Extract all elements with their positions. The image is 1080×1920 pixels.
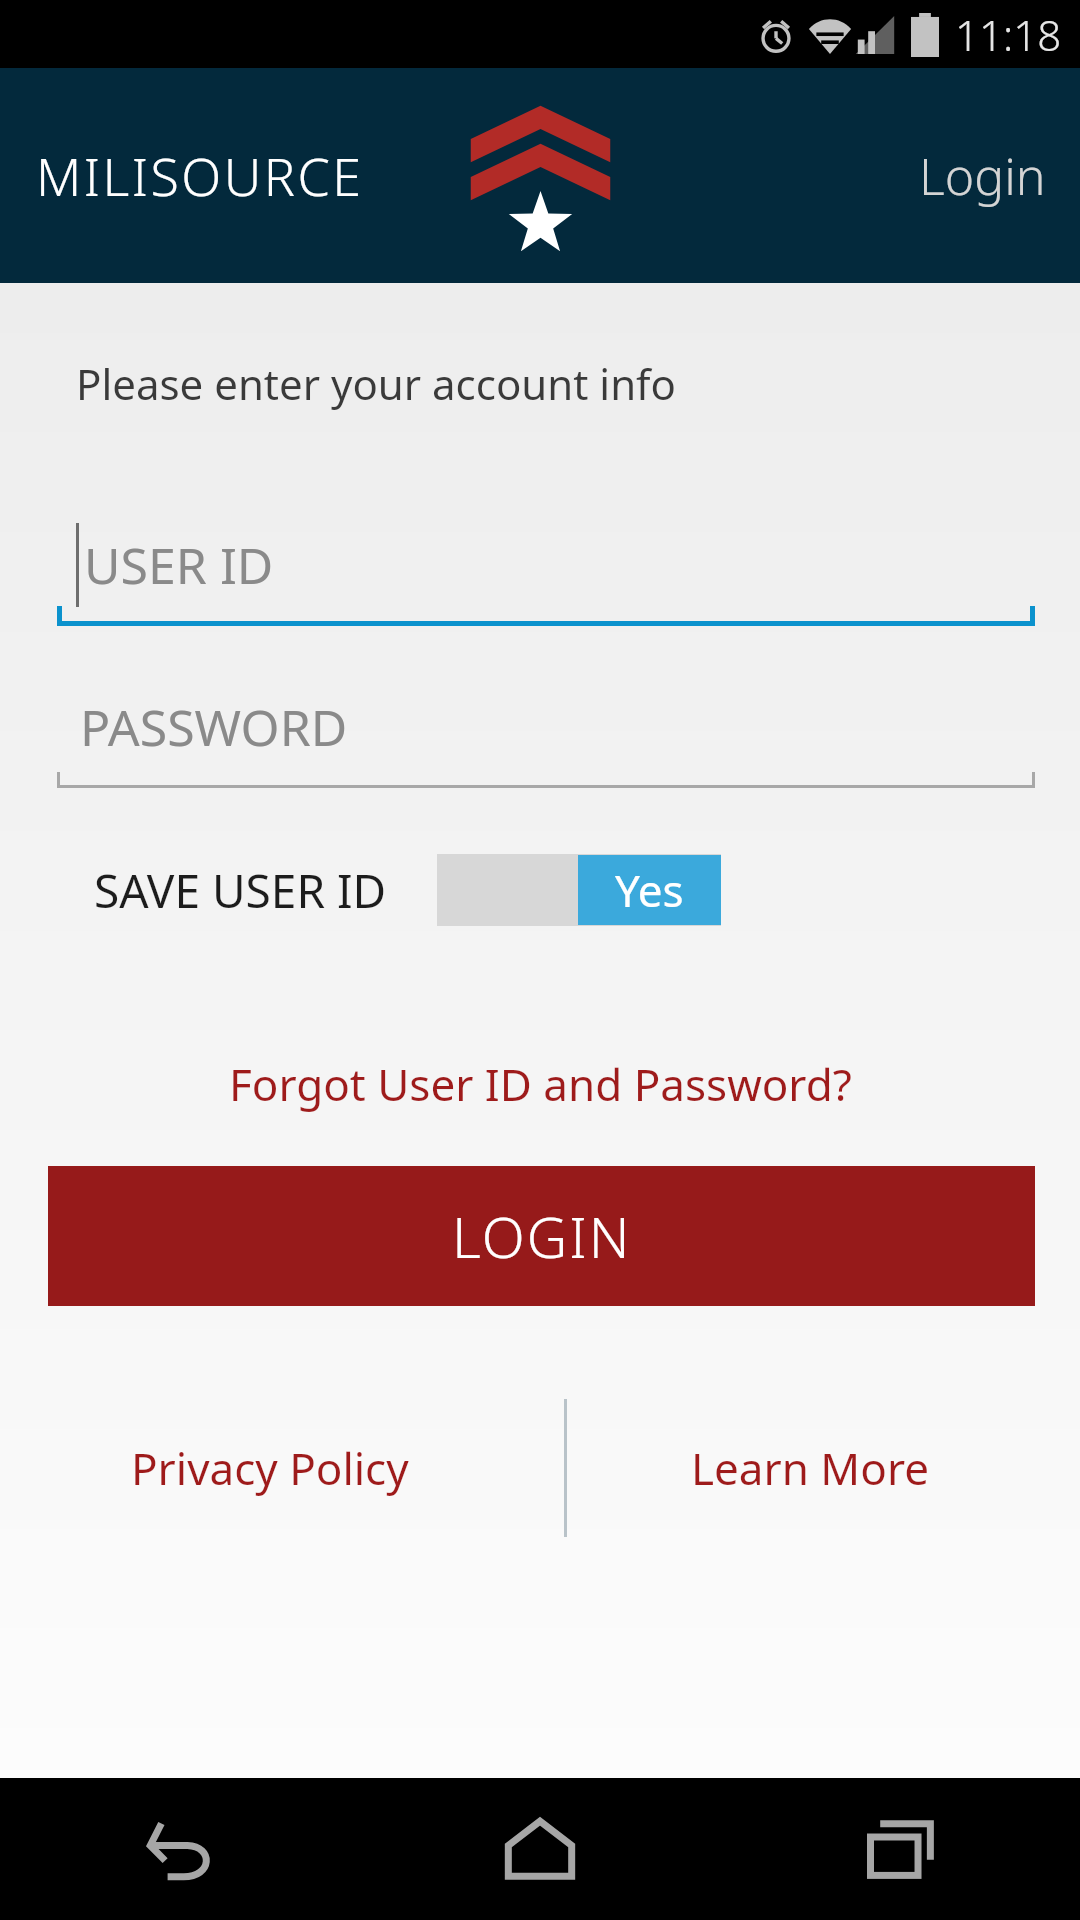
button[interactable]: Save user ID toggle, Yes <box>437 854 721 926</box>
button[interactable]: Home <box>360 1778 720 1920</box>
staticText: Privacy Policy <box>131 1438 409 1498</box>
staticText: Forgot User ID and Password? <box>229 1054 852 1114</box>
button[interactable]: User ID input <box>0 504 1080 626</box>
staticText: Login <box>919 142 1046 210</box>
staticText: Yes <box>615 860 684 920</box>
button[interactable]: Forgot User ID and Password? <box>199 1040 882 1128</box>
staticText: Learn More <box>691 1438 929 1498</box>
button[interactable]: LOGIN <box>48 1166 1035 1306</box>
staticText: SAVE USER ID <box>94 859 387 922</box>
staticText: 11:18 <box>955 6 1062 63</box>
button[interactable]: Back <box>0 1778 360 1920</box>
staticText: USER ID <box>84 531 274 599</box>
staticText: PASSWORD <box>80 693 348 761</box>
button[interactable]: Login <box>885 116 1080 236</box>
button[interactable]: Privacy Policy <box>113 1420 427 1516</box>
button[interactable]: Password input <box>0 666 1080 788</box>
staticText: Please enter your account info <box>76 355 676 412</box>
staticText: MILISOURCE <box>36 140 364 211</box>
button[interactable]: Learn More <box>673 1420 947 1516</box>
button[interactable]: Recent apps <box>720 1778 1080 1920</box>
staticText: LOGIN <box>452 1198 632 1274</box>
